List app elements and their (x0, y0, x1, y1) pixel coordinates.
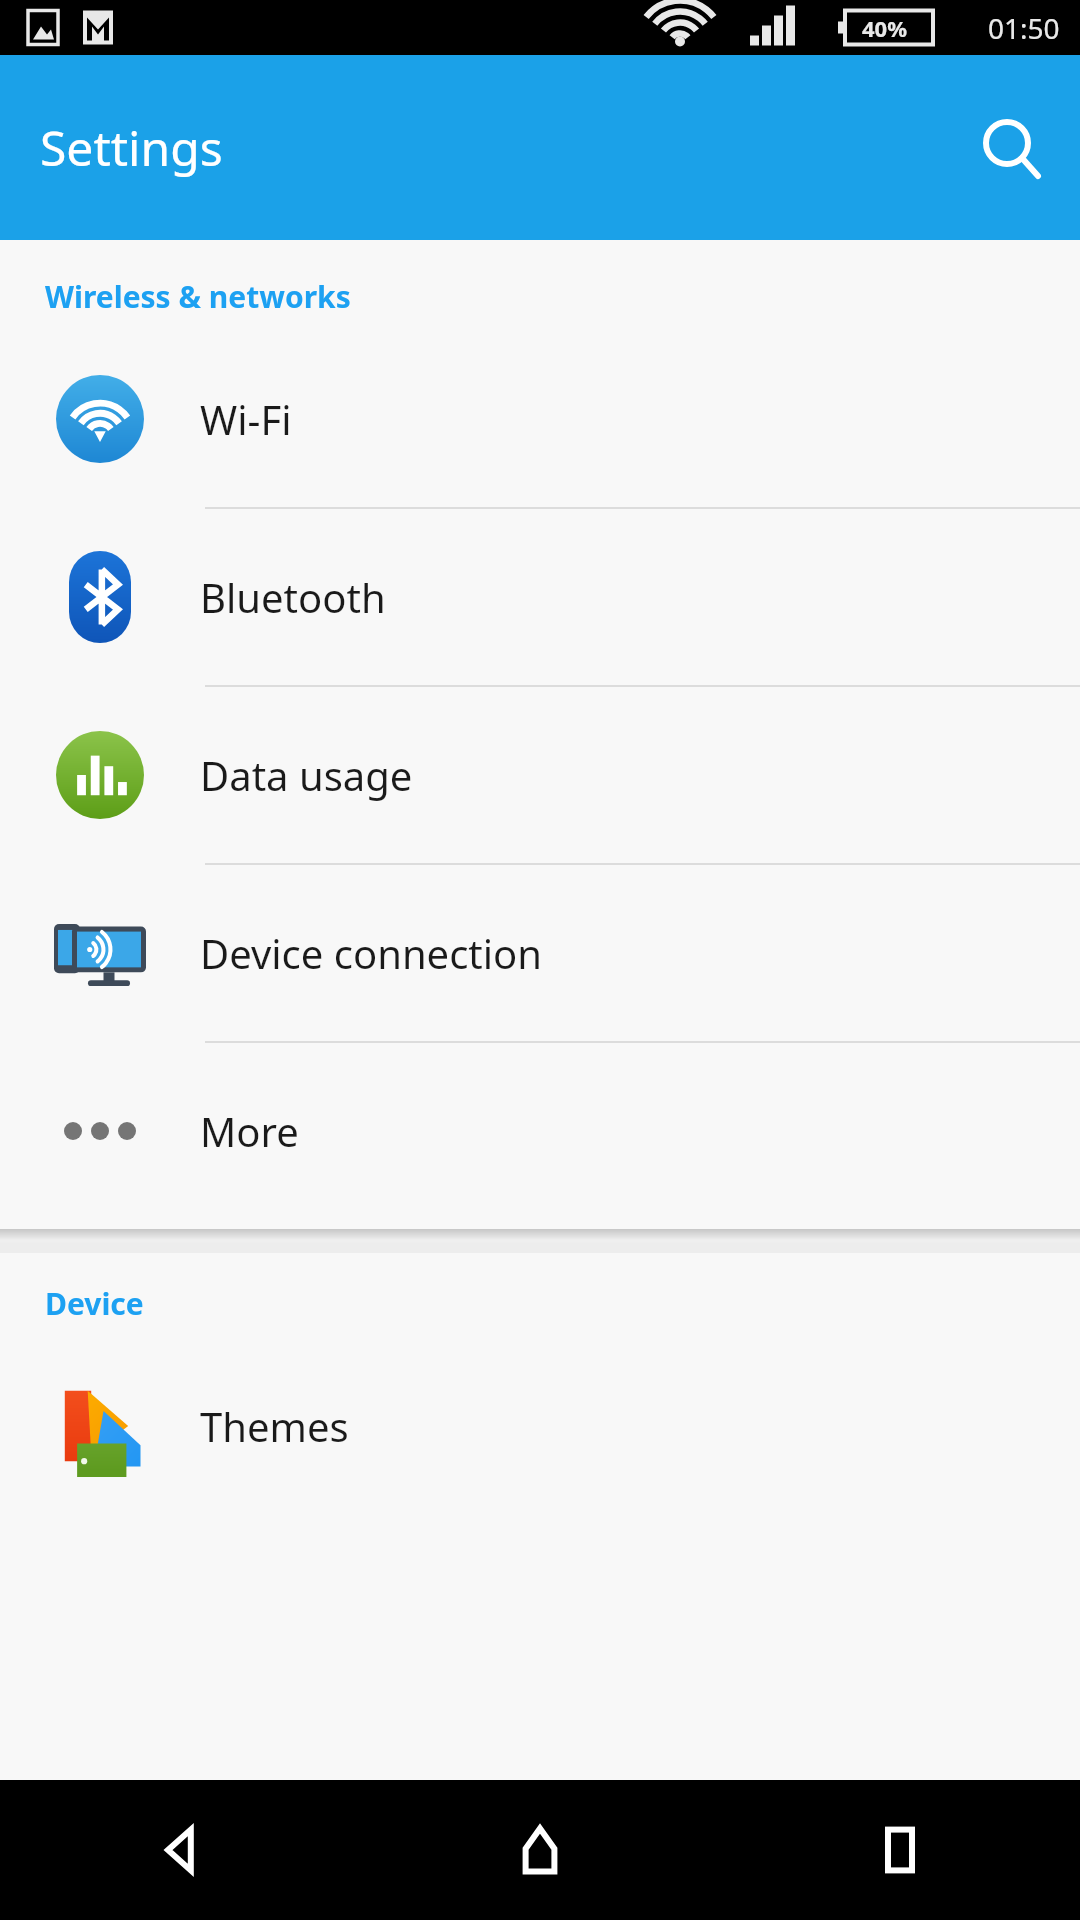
button[interactable]: Data usage (0, 687, 1080, 865)
staticText: Settings (40, 115, 223, 180)
button[interactable]: Home (360, 1780, 720, 1920)
staticText: Device (45, 1283, 144, 1324)
staticText: Themes (200, 1399, 349, 1453)
button[interactable]: Device connection (0, 865, 1080, 1043)
button[interactable]: Bluetooth (0, 509, 1080, 687)
button[interactable]: Wi-Fi (0, 331, 1080, 509)
staticText: Wireless & networks (45, 276, 351, 317)
button[interactable]: Back (0, 1780, 360, 1920)
staticText: 01:50 (988, 9, 1060, 47)
staticText: Device connection (200, 926, 543, 980)
staticText: 40% (862, 13, 908, 43)
staticText: Bluetooth (200, 570, 386, 624)
button[interactable]: More (0, 1043, 1080, 1219)
button[interactable]: Themes (0, 1338, 1080, 1514)
button[interactable]: Recent apps (720, 1780, 1080, 1920)
button[interactable]: Search (962, 100, 1058, 196)
staticText: Wi-Fi (200, 392, 292, 446)
staticText: More (200, 1104, 299, 1158)
staticText: Data usage (200, 748, 413, 802)
